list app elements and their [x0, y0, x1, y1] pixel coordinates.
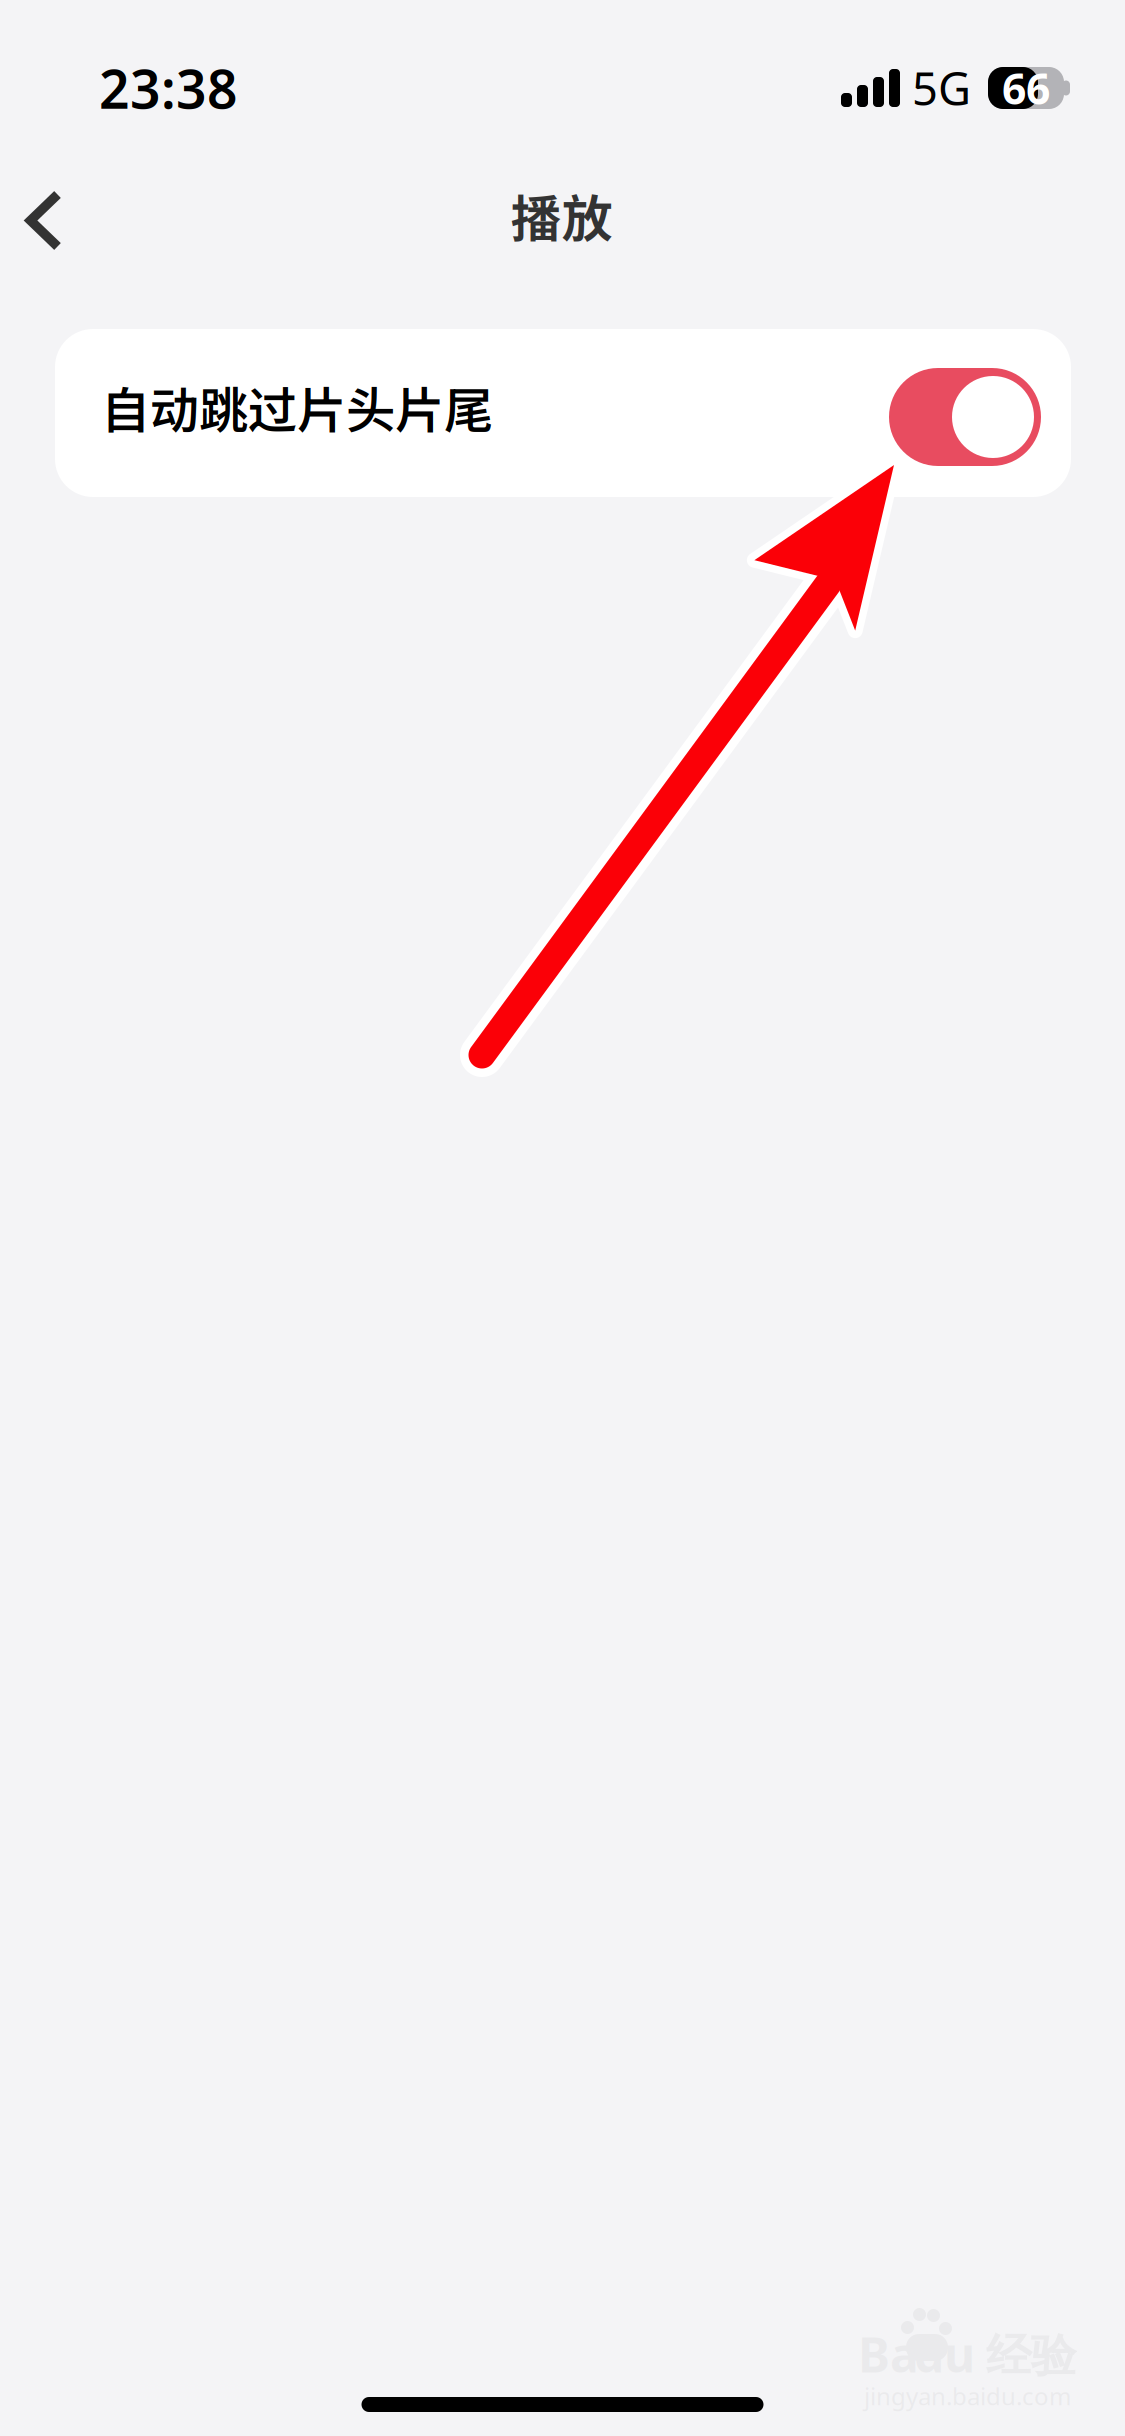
staticText: 66	[1002, 60, 1050, 116]
button[interactable]: Back	[0, 154, 110, 286]
staticText: du	[914, 2322, 975, 2386]
staticText: Ba	[858, 2322, 919, 2386]
staticText: 23:38	[99, 53, 238, 123]
button[interactable]: 自动跳过片头片尾	[55, 329, 1071, 497]
staticText: 自动跳过片头片尾	[101, 371, 493, 443]
staticText: 播放	[510, 179, 612, 252]
staticText: jingyan.baidu.com	[864, 2380, 1071, 2412]
staticText: 经验	[986, 2328, 1076, 2384]
staticText: 5G	[912, 58, 971, 118]
